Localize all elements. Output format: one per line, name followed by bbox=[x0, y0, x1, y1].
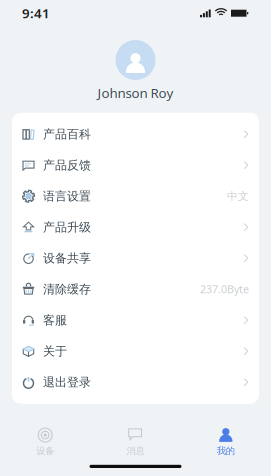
staticText: 产品升级 bbox=[43, 220, 91, 234]
staticText: 消息 bbox=[126, 445, 144, 457]
button[interactable]: 消息 bbox=[90, 427, 181, 457]
staticText: 9:41 bbox=[22, 4, 50, 22]
staticText: 产品百科 bbox=[43, 127, 91, 141]
button[interactable]: 产品百科 bbox=[12, 119, 259, 150]
staticText: 设备共享 bbox=[43, 251, 91, 265]
staticText: 清除缓存 bbox=[43, 282, 91, 296]
button[interactable]: 设备 bbox=[0, 427, 90, 457]
staticText: 产品反馈 bbox=[43, 158, 91, 172]
staticText: 设备 bbox=[36, 445, 54, 457]
staticText: 237.0Byte bbox=[200, 282, 249, 296]
staticText: Johnson Roy bbox=[97, 84, 173, 102]
staticText: 中文 bbox=[227, 190, 249, 203]
staticText: 客服 bbox=[43, 313, 67, 327]
button[interactable]: 清除缓存 bbox=[12, 274, 259, 305]
staticText: 退出登录 bbox=[43, 375, 91, 389]
button[interactable]: 我的 bbox=[181, 427, 271, 457]
button[interactable]: 语言设置 bbox=[12, 181, 259, 212]
button[interactable]: 产品升级 bbox=[12, 212, 259, 243]
staticText: 关于 bbox=[43, 344, 67, 358]
button[interactable]: 设备共享 bbox=[12, 243, 259, 274]
staticText: 我的 bbox=[217, 445, 235, 457]
button[interactable]: 关于 bbox=[12, 336, 259, 367]
staticText: 语言设置 bbox=[43, 189, 91, 203]
button[interactable]: 退出登录 bbox=[12, 367, 259, 398]
button[interactable]: 产品反馈 bbox=[12, 150, 259, 181]
button[interactable]: 客服 bbox=[12, 305, 259, 336]
